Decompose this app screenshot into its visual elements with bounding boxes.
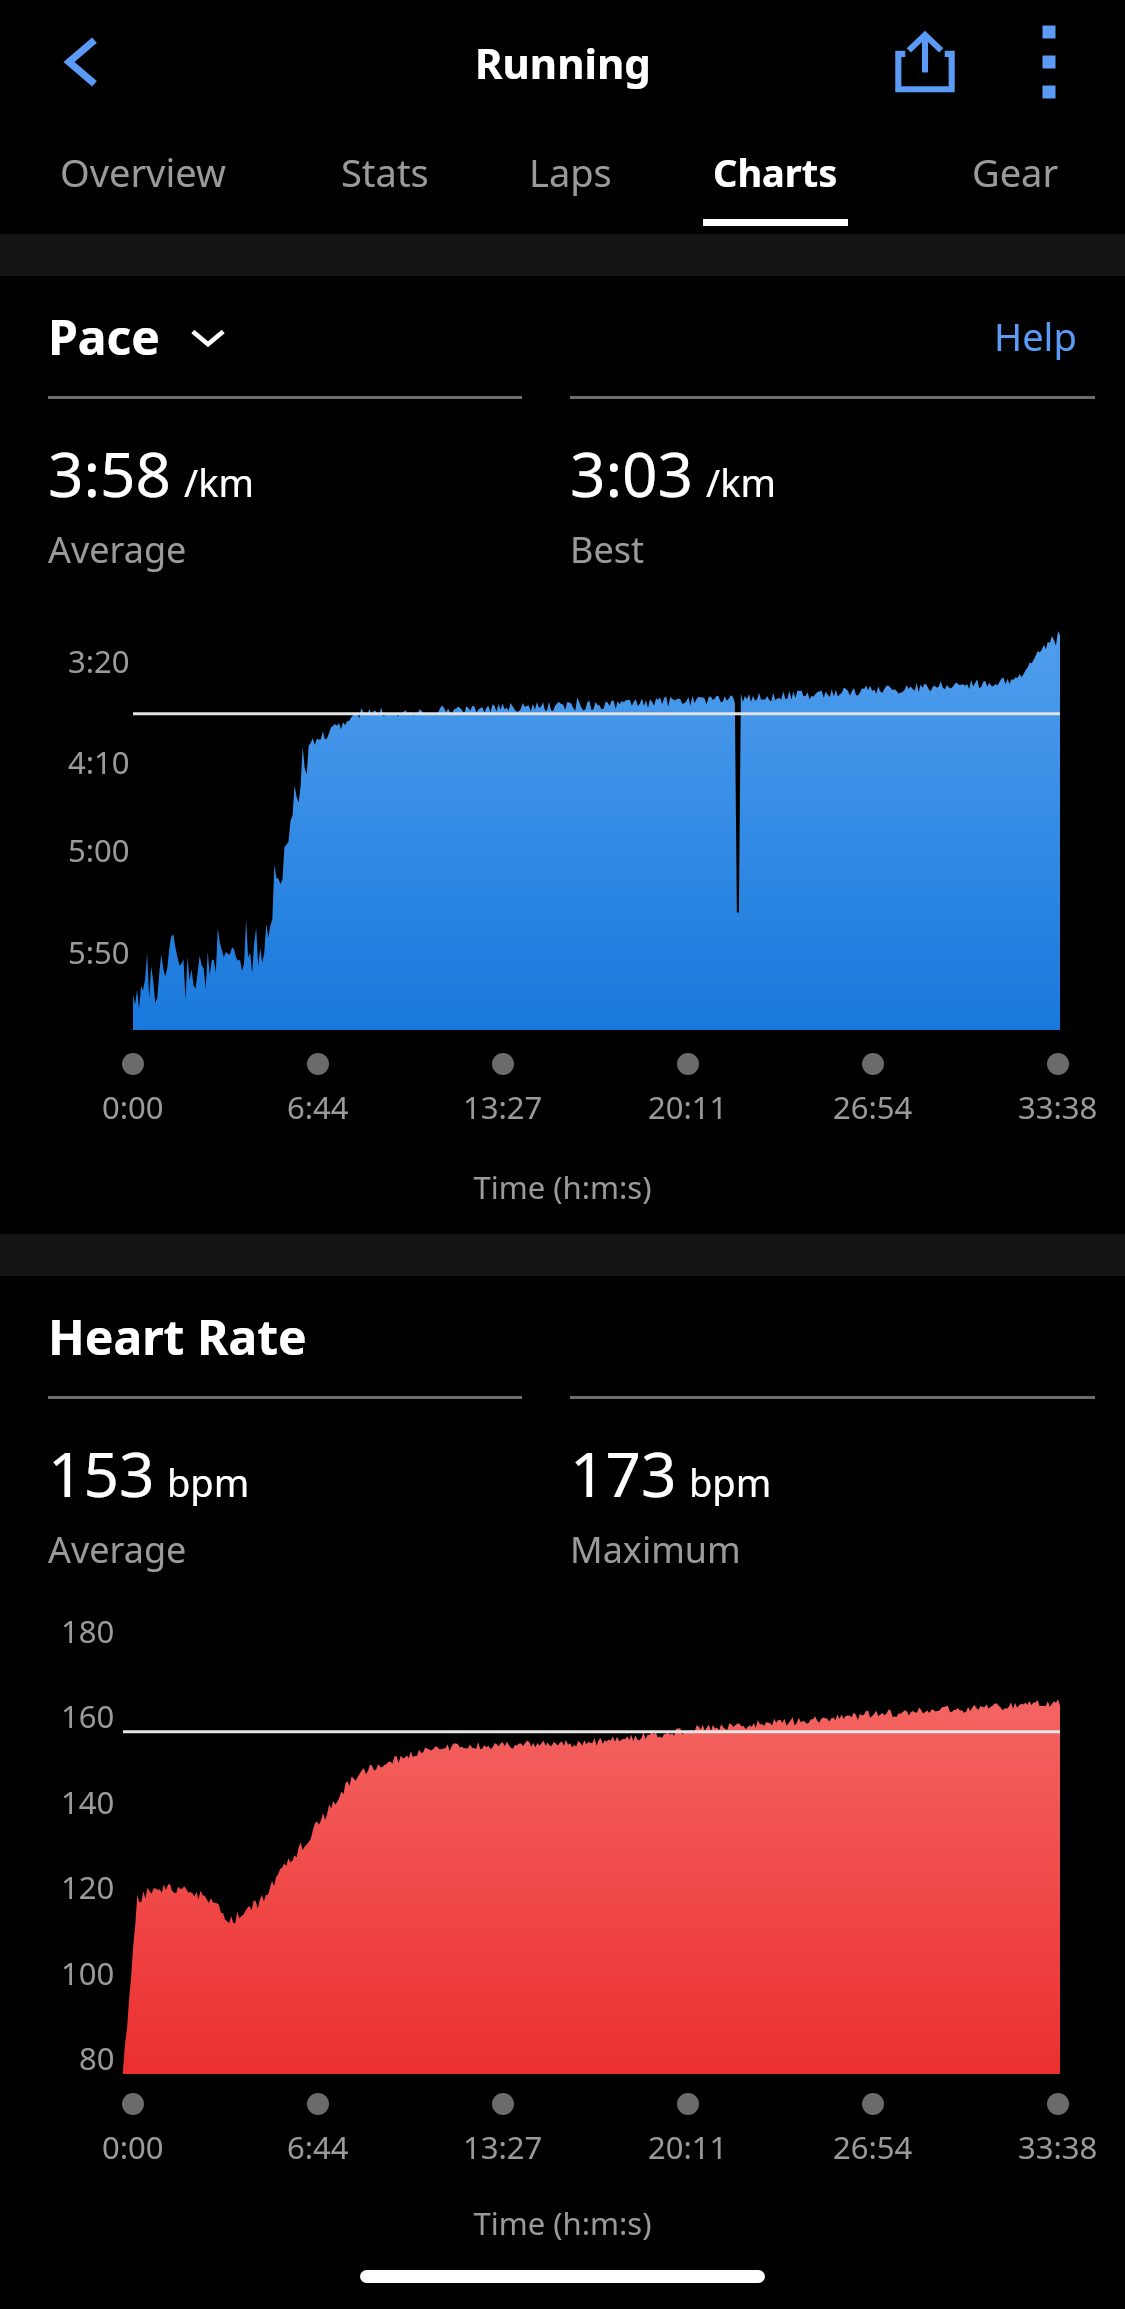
button[interactable]: Overview bbox=[33, 124, 253, 234]
staticText: Average bbox=[48, 525, 187, 574]
staticText: Average bbox=[48, 1525, 187, 1574]
staticText: 180 bbox=[61, 1610, 115, 1652]
staticText: 33:38 bbox=[1018, 2126, 1098, 2168]
button[interactable]: Pace bbox=[48, 304, 228, 369]
staticText: Gear bbox=[972, 146, 1059, 198]
staticText: 6:44 bbox=[287, 2126, 349, 2168]
staticText: Pace bbox=[48, 304, 160, 369]
button[interactable]: More options bbox=[1001, 14, 1097, 110]
staticText: 13:27 bbox=[463, 2126, 543, 2168]
staticText: 26:54 bbox=[833, 1086, 913, 1128]
staticText: 4:10 bbox=[68, 741, 130, 783]
button[interactable]: Help bbox=[986, 298, 1085, 374]
staticText: Stats bbox=[341, 146, 429, 198]
button[interactable]: Share bbox=[877, 14, 973, 110]
button[interactable]: Laps bbox=[460, 124, 680, 234]
staticText: 3:20 bbox=[68, 640, 130, 682]
button[interactable]: Heart Rate bbox=[48, 1304, 307, 1369]
staticText: 160 bbox=[61, 1695, 115, 1737]
staticText: 3:03 bbox=[570, 431, 694, 515]
staticText: 20:11 bbox=[648, 1086, 728, 1128]
staticText: 173 bbox=[570, 1431, 677, 1515]
staticText: 153 bbox=[48, 1431, 155, 1515]
staticText: Overview bbox=[60, 146, 226, 198]
staticText: 100 bbox=[61, 1952, 115, 1994]
staticText: Charts bbox=[713, 146, 838, 198]
staticText: Time (h:m:s) bbox=[0, 1166, 1125, 1208]
staticText: /km bbox=[184, 456, 254, 508]
staticText: 5:50 bbox=[68, 931, 130, 973]
staticText: 3:58 bbox=[48, 431, 172, 515]
staticText: 120 bbox=[61, 1866, 115, 1908]
staticText: 33:38 bbox=[1018, 1086, 1098, 1128]
staticText: Laps bbox=[529, 146, 612, 198]
staticText: 6:44 bbox=[287, 1086, 349, 1128]
staticText: bpm bbox=[167, 1456, 250, 1508]
staticText: /km bbox=[706, 456, 776, 508]
staticText: Best bbox=[570, 525, 644, 574]
staticText: 80 bbox=[79, 2037, 115, 2079]
button[interactable]: Back bbox=[28, 8, 136, 116]
button[interactable]: Stats bbox=[275, 124, 495, 234]
staticText: Maximum bbox=[570, 1525, 741, 1574]
staticText: Time (h:m:s) bbox=[0, 2202, 1125, 2244]
staticText: bpm bbox=[689, 1456, 772, 1508]
staticText: 13:27 bbox=[463, 1086, 543, 1128]
staticText: 0:00 bbox=[102, 2126, 164, 2168]
staticText: Help bbox=[994, 310, 1077, 362]
button[interactable]: Gear bbox=[905, 124, 1125, 234]
staticText: 140 bbox=[61, 1781, 115, 1823]
staticText: Heart Rate bbox=[48, 1304, 307, 1369]
staticText: 0:00 bbox=[102, 1086, 164, 1128]
staticText: 5:00 bbox=[68, 829, 130, 871]
button[interactable]: Charts bbox=[665, 124, 885, 234]
staticText: 20:11 bbox=[648, 2126, 728, 2168]
staticText: 26:54 bbox=[833, 2126, 913, 2168]
staticText: Running bbox=[475, 34, 651, 91]
